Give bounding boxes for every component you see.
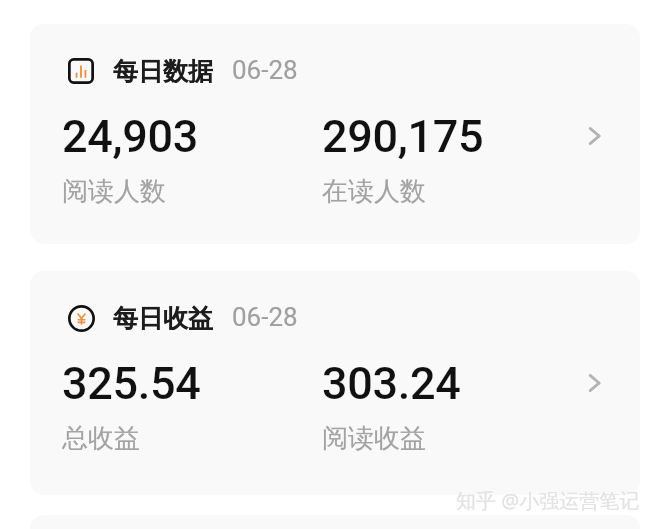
staticText: 每日收益 xyxy=(113,303,213,330)
staticText: 290,175 xyxy=(322,110,484,163)
staticText: 在读人数 xyxy=(322,175,426,208)
button[interactable]: 每日数据 xyxy=(30,24,640,244)
staticText: 24,903 xyxy=(62,110,198,163)
staticText: 每日收益 xyxy=(113,303,213,330)
staticText: 06-28 xyxy=(232,302,298,329)
staticText: 阅读收益 xyxy=(322,422,426,455)
staticText: 总收益 xyxy=(62,422,140,455)
staticText: 知乎 @小强运营笔记 xyxy=(456,487,640,514)
staticText: 每日数据 xyxy=(113,56,213,83)
staticText: 303.24 xyxy=(322,357,461,410)
staticText: 325.54 xyxy=(62,357,201,410)
button[interactable]: 每日收益 xyxy=(30,271,640,495)
staticText: 每日数据 xyxy=(113,56,213,83)
button[interactable]: 查看更多详情 xyxy=(574,363,614,403)
button[interactable]: 查看更多详情 xyxy=(574,116,614,156)
staticText: 阅读人数 xyxy=(62,175,166,208)
staticText: 06-28 xyxy=(232,55,298,82)
